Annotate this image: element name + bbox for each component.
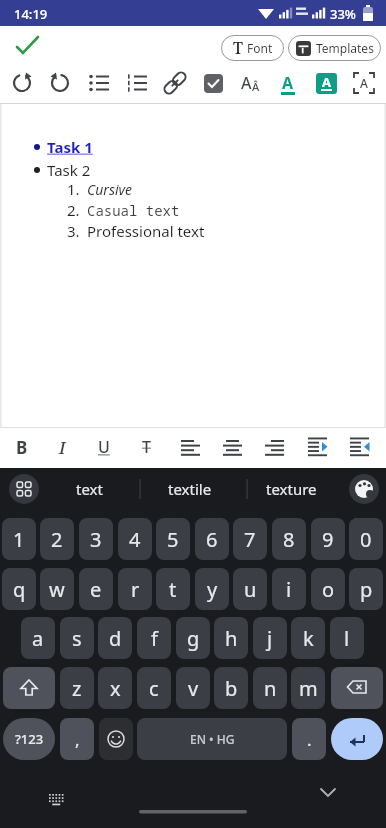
button[interactable]: A	[269, 64, 307, 102]
staticText: f	[151, 625, 158, 652]
button[interactable]: B	[3, 428, 41, 466]
button[interactable]	[255, 428, 293, 466]
button[interactable]: f	[137, 617, 171, 659]
staticText: Task 1	[47, 137, 93, 157]
button[interactable]: i	[272, 568, 306, 610]
staticText: 2	[51, 526, 63, 553]
staticText: g	[187, 625, 200, 652]
button[interactable]	[299, 428, 337, 466]
staticText: Task 2	[47, 160, 91, 180]
button[interactable]: ,	[60, 718, 94, 760]
button[interactable]: 1	[2, 518, 36, 560]
button[interactable]: h	[214, 617, 248, 659]
staticText: e	[90, 576, 102, 603]
button[interactable]: A	[231, 64, 269, 102]
button[interactable]	[9, 474, 39, 504]
button[interactable]: ?123	[3, 718, 55, 760]
button[interactable]: 8	[272, 518, 306, 560]
button[interactable]: k	[291, 617, 325, 659]
button[interactable]: r	[118, 568, 152, 610]
staticText: s	[72, 625, 82, 652]
button[interactable]: x	[98, 667, 132, 709]
button[interactable]	[194, 64, 232, 102]
staticText: 1	[13, 526, 25, 553]
button[interactable]: c	[137, 667, 171, 709]
staticText: y	[207, 576, 218, 603]
staticText: Casual text	[87, 201, 180, 220]
button[interactable]: e	[79, 568, 113, 610]
button[interactable]: z	[60, 667, 94, 709]
button[interactable]: a	[21, 617, 55, 659]
staticText: texture	[266, 479, 317, 499]
button[interactable]: T	[221, 35, 284, 61]
button[interactable]: w	[40, 568, 74, 610]
staticText: T	[142, 436, 151, 458]
staticText: 3	[90, 526, 102, 553]
button[interactable]	[118, 64, 156, 102]
button[interactable]: 0	[349, 518, 383, 560]
button[interactable]	[331, 667, 383, 709]
button[interactable]: 2	[40, 518, 74, 560]
button[interactable]	[331, 718, 383, 760]
button[interactable]	[213, 428, 251, 466]
staticText: k	[303, 625, 314, 652]
button[interactable]: EN • HG	[137, 718, 287, 760]
button[interactable]: d	[98, 617, 132, 659]
button[interactable]: g	[176, 617, 210, 659]
button[interactable]: 7	[233, 518, 267, 560]
button[interactable]	[171, 428, 209, 466]
button[interactable]: 3	[79, 518, 113, 560]
button[interactable]: texture	[252, 474, 330, 504]
button[interactable]: m	[291, 667, 325, 709]
staticText: ?123	[15, 730, 44, 748]
staticText: 33%	[330, 5, 356, 23]
staticText: u	[244, 576, 257, 603]
staticText: T	[233, 37, 243, 59]
staticText: textile	[168, 479, 212, 499]
button[interactable]: textile	[150, 474, 230, 504]
button[interactable]	[3, 64, 41, 102]
button[interactable]: U	[85, 428, 123, 466]
button[interactable]	[41, 64, 79, 102]
button[interactable]: o	[311, 568, 345, 610]
staticText: 8	[283, 526, 295, 553]
staticText: Font	[247, 40, 273, 56]
button[interactable]: .	[292, 718, 326, 760]
staticText: Cursive	[87, 180, 133, 199]
button[interactable]	[80, 64, 118, 102]
button[interactable]: T	[127, 428, 165, 466]
staticText: 6	[206, 526, 218, 553]
button[interactable]: l	[330, 617, 364, 659]
button[interactable]	[341, 428, 379, 466]
button[interactable]: v	[176, 667, 210, 709]
button[interactable]: s	[60, 617, 94, 659]
button[interactable]: Templates	[288, 35, 381, 61]
button[interactable]	[156, 64, 194, 102]
button[interactable]	[3, 667, 55, 709]
staticText: 0	[360, 526, 372, 553]
button[interactable]: t	[156, 568, 190, 610]
staticText: w	[49, 576, 65, 603]
staticText: b	[225, 675, 238, 702]
button[interactable]: 4	[118, 518, 152, 560]
button[interactable]: j	[253, 617, 287, 659]
button[interactable]	[349, 474, 379, 504]
button[interactable]: A	[345, 64, 383, 102]
staticText: 3.	[67, 221, 80, 241]
staticText: ,	[75, 728, 80, 751]
button[interactable]: y	[195, 568, 229, 610]
button[interactable]	[99, 718, 133, 760]
button[interactable]: q	[2, 568, 36, 610]
button[interactable]: text	[56, 474, 122, 504]
button[interactable]: 5	[156, 518, 190, 560]
button[interactable]: p	[349, 568, 383, 610]
button[interactable]: u	[233, 568, 267, 610]
button[interactable]	[12, 33, 44, 59]
button[interactable]: b	[214, 667, 248, 709]
button[interactable]: n	[253, 667, 287, 709]
button[interactable]: 6	[195, 518, 229, 560]
button[interactable]: A	[307, 64, 345, 102]
button[interactable]: I	[43, 428, 81, 466]
button[interactable]: 9	[311, 518, 345, 560]
staticText: n	[264, 675, 277, 702]
